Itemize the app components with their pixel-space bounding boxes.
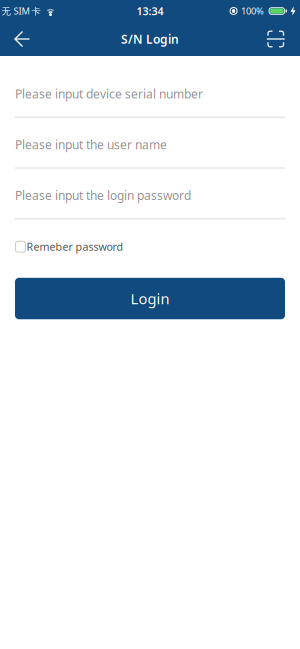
button[interactable]: Login (15, 278, 285, 319)
staticText: 无 SIM 卡 (1, 5, 40, 17)
staticText: Remeber password (26, 240, 123, 254)
button[interactable] (0, 22, 29, 55)
button[interactable] (268, 22, 300, 56)
button[interactable]: Please input the user name (15, 137, 285, 169)
staticText: Please input the login password (15, 187, 191, 203)
staticText: S/N Login (121, 31, 179, 47)
staticText: Login (130, 289, 169, 308)
staticText: 100% (241, 5, 264, 17)
button[interactable]: Please input device serial number (15, 86, 285, 118)
staticText: 13:34 (136, 4, 163, 18)
button[interactable]: Remeber password (15, 240, 123, 254)
button[interactable]: Please input the login password (15, 187, 285, 220)
staticText: Please input the user name (15, 137, 167, 153)
staticText: Please input device serial number (15, 86, 203, 102)
